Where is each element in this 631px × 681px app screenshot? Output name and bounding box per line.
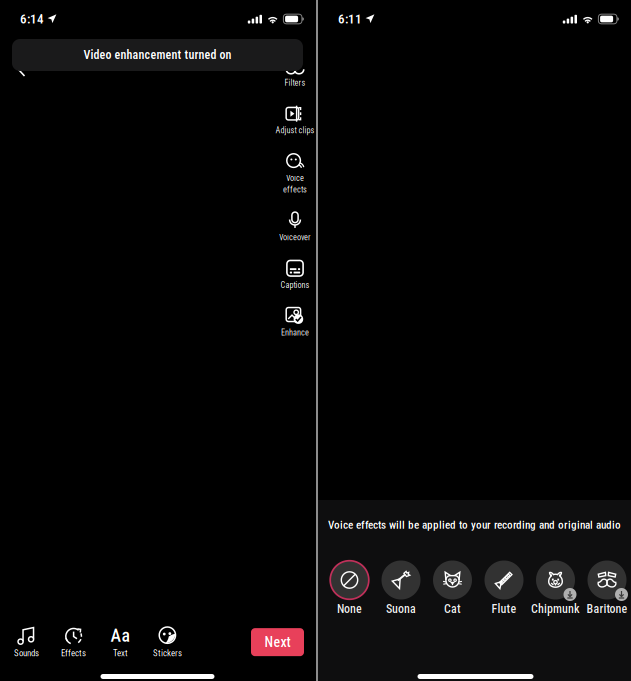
button[interactable]: Flute xyxy=(484,560,524,618)
staticText: Next xyxy=(264,634,290,650)
staticText: Effects xyxy=(61,648,86,658)
staticText: 6:11 xyxy=(338,11,362,27)
button[interactable]: None xyxy=(329,560,369,618)
staticText: Voiceover xyxy=(279,233,311,242)
staticText: Text xyxy=(113,648,128,658)
button[interactable]: Baritone xyxy=(587,560,627,618)
button[interactable]: Cat xyxy=(432,560,472,618)
staticText: Voice xyxy=(286,173,304,183)
staticText: Captions xyxy=(280,280,309,290)
staticText: Filters xyxy=(284,78,305,88)
button[interactable]: Voice xyxy=(273,152,317,195)
staticText: Enhance xyxy=(281,328,309,338)
button[interactable]: Effects xyxy=(50,626,97,658)
staticText: None xyxy=(337,602,362,616)
button[interactable]: Sounds xyxy=(3,626,50,658)
staticText: Voice effects will be applied to your re… xyxy=(328,518,621,531)
button[interactable]: Captions xyxy=(273,259,317,290)
button[interactable]: Chipmunk xyxy=(535,560,575,618)
staticText: Baritone xyxy=(586,602,627,616)
staticText: Aa xyxy=(110,625,130,646)
staticText: Video enhancement turned on xyxy=(83,48,231,62)
staticText: Sounds xyxy=(14,648,39,658)
button[interactable]: Stickers xyxy=(144,626,191,658)
button[interactable]: Aa xyxy=(97,626,144,658)
staticText: Cat xyxy=(444,602,461,616)
staticText: 6:14 xyxy=(20,11,44,27)
button[interactable]: Next xyxy=(251,628,304,656)
button[interactable]: Adjust clips xyxy=(273,105,317,135)
button[interactable]: Enhance xyxy=(273,307,317,338)
staticText: effects xyxy=(283,185,307,195)
staticText: Adjust clips xyxy=(275,126,314,135)
staticText: Flute xyxy=(491,602,516,616)
button[interactable]: Suona xyxy=(381,560,421,618)
button[interactable]: Back xyxy=(8,54,36,86)
button[interactable]: Voiceover xyxy=(273,212,317,242)
staticText: Stickers xyxy=(153,648,182,658)
staticText: Suona xyxy=(386,602,416,616)
staticText: Chipmunk xyxy=(531,602,580,616)
button[interactable]: Filters xyxy=(273,57,317,88)
